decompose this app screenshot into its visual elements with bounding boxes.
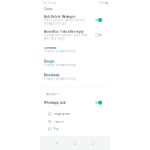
button[interactable]: Groups bbox=[40, 56, 110, 70]
staticText: Other people cannot delete bbox=[44, 18, 85, 22]
staticText: Groups bbox=[44, 60, 54, 63]
staticText: Pin bbox=[54, 127, 59, 131]
staticText: messages for you bbox=[44, 22, 67, 25]
button[interactable]: Contacts bbox=[40, 42, 110, 56]
staticText: Whatsapp Lock bbox=[44, 101, 66, 104]
staticText: Anti-Delete Messages bbox=[44, 15, 75, 18]
staticText: Chats bbox=[44, 7, 52, 11]
button[interactable]: Anti-Delete Messages bbox=[40, 12, 110, 27]
button[interactable]: Whatsapp Lock bbox=[40, 97, 110, 108]
button[interactable]: Pin bbox=[40, 125, 110, 133]
button[interactable]: Fingerprint bbox=[40, 110, 110, 118]
staticText: Contact will only see blue ticks bbox=[44, 33, 87, 37]
staticText: Broadcasts bbox=[44, 73, 59, 77]
button[interactable]: Back bbox=[55, 141, 58, 145]
staticText: Change privacy settings bbox=[44, 49, 76, 53]
staticText: Fingerprint bbox=[54, 112, 70, 116]
button[interactable]: Pattern bbox=[40, 118, 110, 125]
button[interactable]: Broadcasts bbox=[40, 70, 110, 84]
staticText: Change privacy settings bbox=[44, 63, 76, 67]
staticText: Show Blue Ticks after reply bbox=[44, 30, 83, 33]
staticText: Pattern bbox=[54, 120, 64, 123]
staticText: Change privacy settings bbox=[44, 77, 76, 80]
button[interactable]: Show Blue Ticks after reply bbox=[40, 27, 110, 42]
staticText: 84% bbox=[99, 1, 105, 5]
button[interactable]: Home bbox=[73, 141, 77, 145]
button[interactable]: Recent apps bbox=[92, 142, 95, 144]
staticText: after you reply bbox=[44, 37, 64, 40]
staticText: SECURITY bbox=[46, 92, 59, 96]
staticText: Contacts bbox=[44, 46, 56, 49]
staticText: 12:04 bbox=[42, 1, 51, 5]
